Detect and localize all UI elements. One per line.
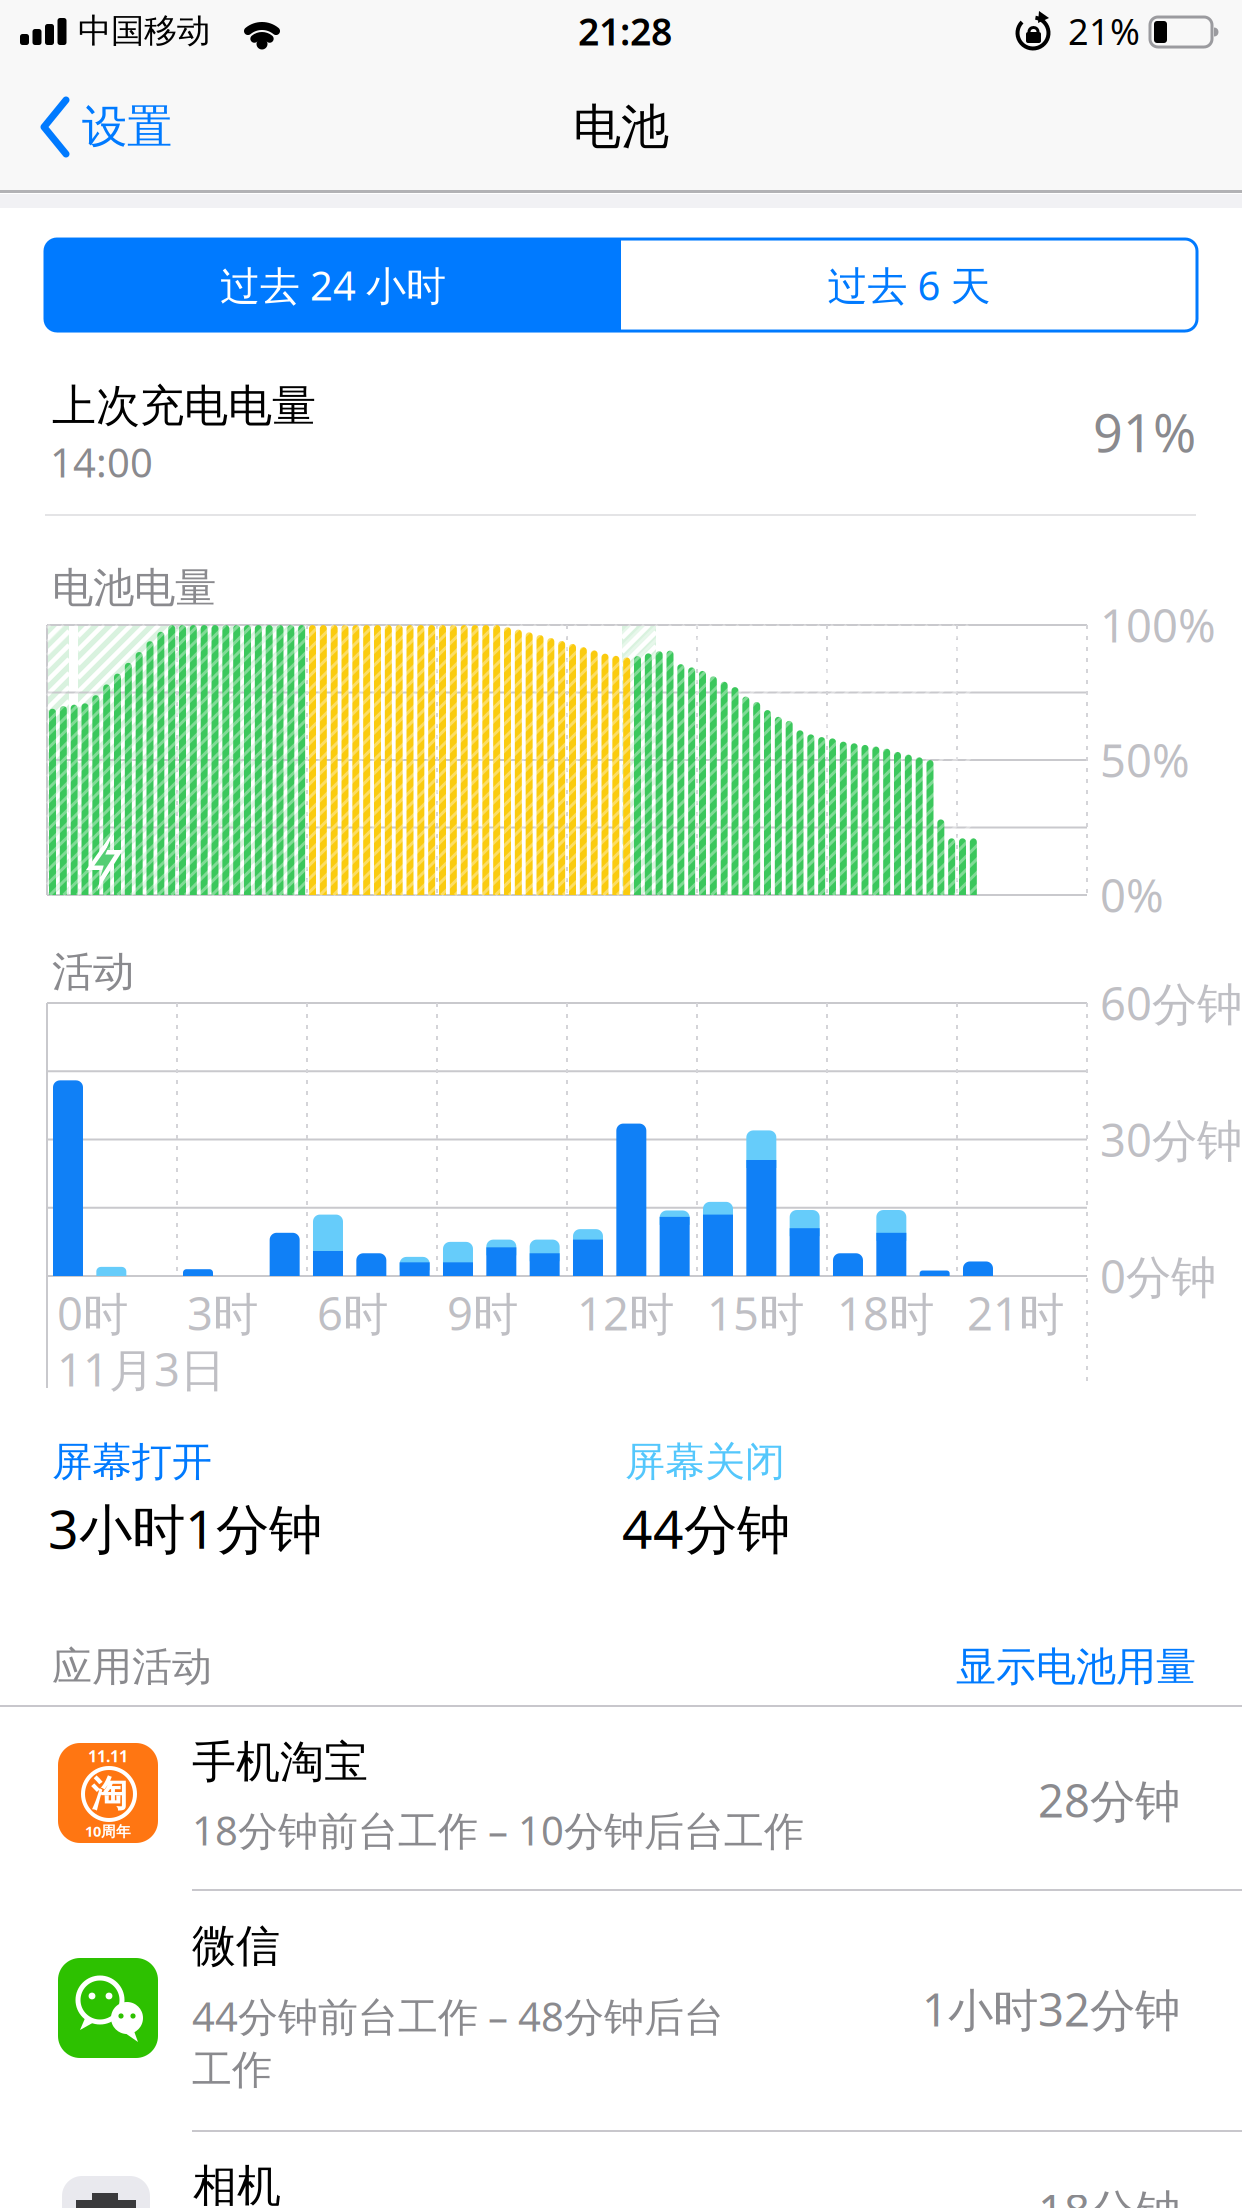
staticText: 0分钟 [1100, 1246, 1216, 1306]
staticText: 0% [1100, 865, 1164, 925]
staticText: 44分钟 [622, 1493, 790, 1563]
staticText: 屏幕打开 [52, 1437, 212, 1486]
staticText: 50% [1100, 730, 1190, 790]
staticText: 11.11 [88, 1745, 128, 1767]
staticText: 9时 [447, 1283, 518, 1343]
staticText: 电池 [573, 97, 669, 156]
staticText: 12时 [577, 1283, 674, 1343]
staticText: 过去 6 天 [827, 258, 990, 311]
staticText: 显示电池用量 [956, 1642, 1196, 1691]
staticText: 电池电量 [52, 563, 216, 613]
staticText: 21% [1068, 7, 1140, 55]
button[interactable]: 相机 [0, 2131, 1242, 2208]
button[interactable]: 设置 [40, 92, 172, 162]
staticText: 91% [1093, 397, 1196, 467]
staticText: 应用活动 [52, 1642, 212, 1691]
staticText: 手机淘宝 [192, 1735, 368, 1789]
button[interactable]: 11.11 [0, 1707, 1242, 1889]
staticText: 6时 [317, 1283, 388, 1343]
staticText: 上次充电电量 [52, 379, 316, 433]
staticText: 15时 [707, 1283, 804, 1343]
staticText: 活动 [52, 947, 134, 997]
button[interactable]: 微信 [0, 1889, 1242, 2131]
staticText: 相机 [193, 2159, 281, 2208]
button[interactable]: 过去 24 小时 [45, 239, 621, 331]
staticText: 过去 24 小时 [220, 258, 446, 311]
staticText: 屏幕关闭 [625, 1437, 785, 1486]
staticText: 1小时32分钟 [922, 1979, 1180, 2039]
staticText: 淘 [91, 1772, 127, 1816]
staticText: 100% [1100, 595, 1216, 655]
staticText: 工作 [192, 2045, 272, 2094]
staticText: 30分钟 [1100, 1109, 1242, 1170]
staticText: 3时 [187, 1283, 258, 1343]
staticText: 微信 [192, 1919, 280, 1973]
staticText: 14:00 [50, 435, 153, 488]
staticText: 60分钟 [1100, 973, 1242, 1033]
staticText: 18分钟 [1038, 2180, 1180, 2208]
staticText: 18时 [837, 1283, 934, 1343]
staticText: 28分钟 [1038, 1770, 1180, 1830]
staticText: 中国移动 [78, 10, 210, 51]
staticText: 44分钟前台工作 – 48分钟后台 [192, 1989, 724, 2042]
staticText: 18分钟前台工作 – 10分钟后台工作 [192, 1803, 804, 1856]
staticText: 设置 [82, 99, 172, 155]
staticText: 10周年 [85, 1821, 131, 1841]
staticText: 3小时1分钟 [48, 1493, 322, 1563]
staticText: 11月3日 [57, 1339, 225, 1399]
staticText: 21:28 [578, 6, 672, 56]
button[interactable]: 过去 6 天 [621, 239, 1197, 331]
staticText: 21时 [967, 1283, 1064, 1343]
staticText: 0时 [57, 1283, 128, 1343]
button[interactable]: 显示电池用量 [796, 1632, 1196, 1702]
